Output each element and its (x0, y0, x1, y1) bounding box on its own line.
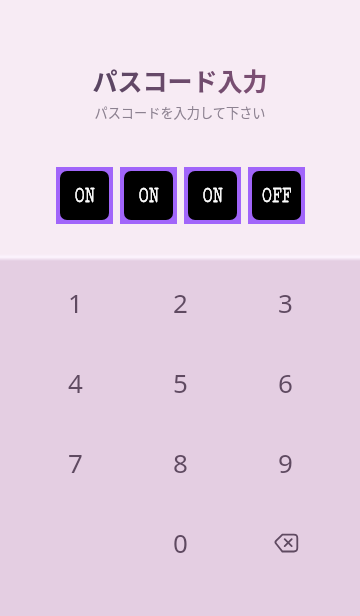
button[interactable]: 2 (138, 272, 222, 332)
button[interactable]: ON (56, 167, 113, 224)
staticText: OFF (262, 182, 292, 208)
other: Backspace (271, 531, 299, 553)
button[interactable]: 5 (138, 352, 222, 412)
button[interactable]: 4 (33, 352, 117, 412)
staticText: パスコードを入力して下さい (0, 103, 360, 122)
staticText: パスコード入力 (0, 62, 360, 98)
button[interactable]: 0 (138, 512, 222, 572)
staticText: 0 (173, 525, 188, 560)
staticText: ON (203, 182, 223, 208)
staticText: 8 (173, 445, 188, 480)
staticText: ON (75, 182, 95, 208)
staticText: ON (139, 182, 159, 208)
button[interactable]: 7 (33, 432, 117, 492)
staticText: ON (203, 182, 223, 208)
button[interactable]: 9 (243, 432, 327, 492)
button[interactable]: ON (184, 167, 241, 224)
button[interactable]: OFF (248, 167, 305, 224)
staticText: 5 (173, 365, 188, 400)
button[interactable]: Backspace (243, 512, 327, 572)
staticText: 4 (68, 365, 83, 400)
staticText: OFF (262, 182, 292, 208)
button[interactable]: 1 (33, 272, 117, 332)
staticText: 9 (278, 445, 293, 480)
staticText: 3 (278, 285, 293, 320)
staticText: 2 (173, 285, 188, 320)
staticText: 7 (68, 445, 83, 480)
staticText: ON (139, 182, 159, 208)
staticText: 1 (68, 285, 83, 320)
button[interactable]: 8 (138, 432, 222, 492)
staticText: 6 (278, 365, 293, 400)
button[interactable]: ON (120, 167, 177, 224)
button[interactable]: 6 (243, 352, 327, 412)
button[interactable]: 3 (243, 272, 327, 332)
staticText: ON (75, 182, 95, 208)
